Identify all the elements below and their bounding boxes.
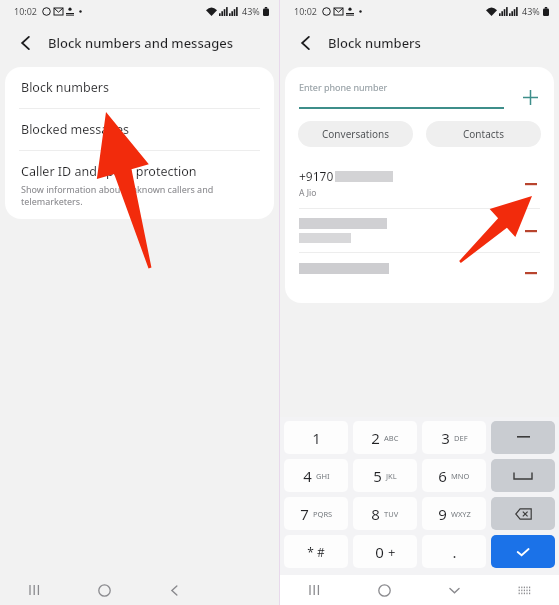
staticText: 8 <box>371 504 380 524</box>
button[interactable]: * # <box>284 535 348 568</box>
other: Space <box>491 459 555 492</box>
staticText: Conversations <box>322 127 390 141</box>
staticText: A Jio <box>299 187 317 199</box>
button[interactable]: Block numbers <box>5 67 274 108</box>
staticText: Block numbers <box>328 34 421 52</box>
button[interactable]: Unblock <box>520 262 542 284</box>
button[interactable]: Home <box>69 575 139 605</box>
button[interactable]: 5 <box>353 459 417 492</box>
staticText: 43% <box>522 5 540 17</box>
staticText: JKL <box>386 471 397 481</box>
staticText: Caller ID and spam protection <box>21 163 197 180</box>
staticText: 10:02 <box>14 5 38 17</box>
button[interactable]: 0 <box>353 535 417 568</box>
staticText: + <box>388 543 396 561</box>
button[interactable]: Unblock <box>285 209 554 252</box>
button[interactable]: Recents <box>280 575 349 605</box>
button[interactable]: Hide keyboard <box>419 575 489 605</box>
staticText: 6 <box>438 466 447 486</box>
staticText: 2 <box>371 428 380 448</box>
staticText: 10:02 <box>294 5 318 17</box>
staticText: TUV <box>384 509 399 519</box>
staticText: * # <box>307 544 325 560</box>
button[interactable]: Blocked messages <box>5 109 274 150</box>
staticText: 4 <box>303 466 312 486</box>
button[interactable]: . <box>422 535 486 568</box>
button[interactable]: Back <box>292 29 320 57</box>
staticText: PQRS <box>313 509 333 519</box>
button[interactable]: Unblock <box>285 253 554 293</box>
staticText: MNO <box>451 471 470 481</box>
staticText: Contacts <box>463 127 504 141</box>
button[interactable]: Home <box>349 575 419 605</box>
staticText: Show information about unknown callers a… <box>21 183 258 207</box>
button[interactable]: Recents <box>0 575 69 605</box>
button[interactable]: Caller ID and spam protection <box>5 151 274 219</box>
button[interactable]: 7 <box>284 497 348 530</box>
staticText: . <box>452 542 457 562</box>
staticText: 3 <box>441 428 450 448</box>
staticText: 5 <box>373 466 382 486</box>
button[interactable]: +9170 <box>285 159 554 208</box>
button[interactable]: Space <box>491 459 555 492</box>
other: Backspace <box>491 497 555 530</box>
button[interactable]: Add number <box>518 85 542 109</box>
button[interactable]: Back <box>139 575 209 605</box>
button[interactable]: 2 <box>353 421 417 454</box>
other: Confirm <box>491 535 555 568</box>
button[interactable]: Unblock <box>520 220 542 242</box>
staticText: GHI <box>316 471 330 481</box>
staticText: 1 <box>312 428 321 448</box>
button[interactable]: Dash <box>491 421 555 454</box>
button[interactable]: 4 <box>284 459 348 492</box>
button[interactable]: 3 <box>422 421 486 454</box>
staticText: Blocked messages <box>21 121 130 138</box>
button[interactable]: Conversations <box>298 121 413 147</box>
button[interactable]: Back <box>12 29 40 57</box>
staticText: 7 <box>300 504 309 524</box>
staticText: ABC <box>384 433 399 443</box>
other: Dash <box>491 421 555 454</box>
staticText: DEF <box>454 433 468 443</box>
button[interactable]: Backspace <box>491 497 555 530</box>
button[interactable]: 9 <box>422 497 486 530</box>
staticText: WXYZ <box>451 509 471 519</box>
button[interactable]: Keyboard layout <box>489 575 559 605</box>
staticText: Block numbers and messages <box>48 34 234 52</box>
staticText: Block numbers <box>21 79 109 96</box>
staticText: 0 <box>375 542 384 562</box>
button[interactable]: 6 <box>422 459 486 492</box>
button[interactable]: Contacts <box>426 121 541 147</box>
staticText: 43% <box>242 5 260 17</box>
staticText: +9170 <box>299 168 334 184</box>
staticText: Enter phone number <box>299 81 388 93</box>
button[interactable]: Confirm <box>491 535 555 568</box>
button[interactable]: 8 <box>353 497 417 530</box>
button[interactable]: 1 <box>284 421 348 454</box>
staticText: 9 <box>438 504 447 524</box>
button[interactable]: Unblock <box>520 173 542 195</box>
